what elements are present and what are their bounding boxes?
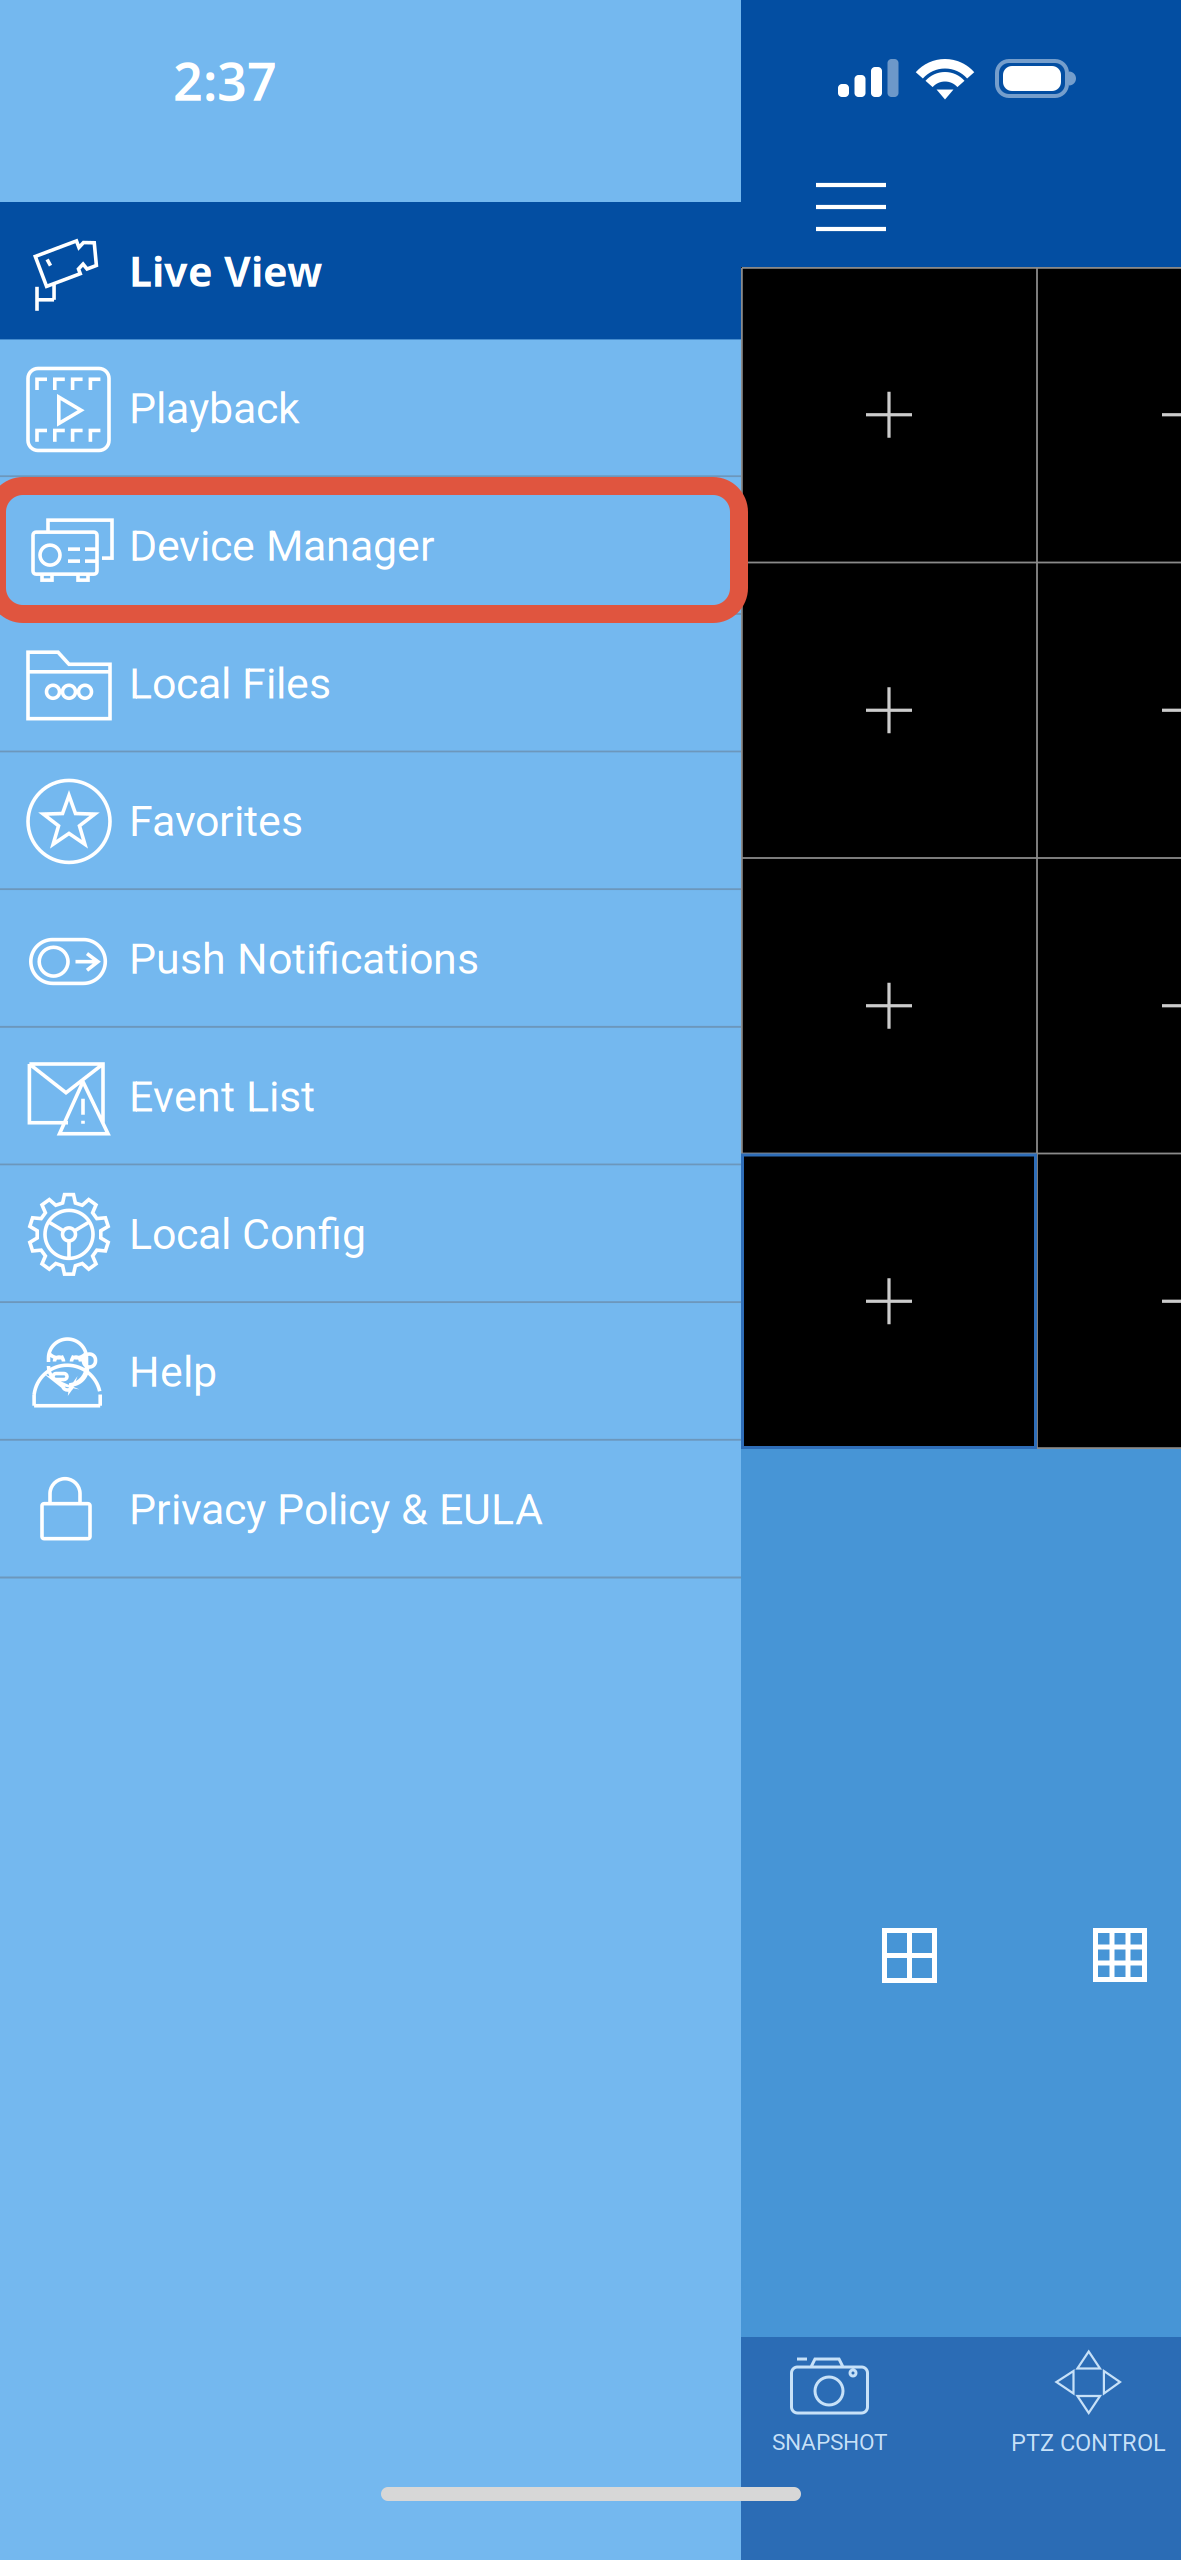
button[interactable]: Favorites [0,753,741,890]
button[interactable]: Device Manager [0,477,741,615]
button[interactable]: Push Notifications [0,890,741,1028]
staticText: SNAPSHOT [772,2429,888,2456]
button[interactable]: Nine camera layout [1057,1892,1181,2018]
staticText: Local Config [129,1209,366,1259]
staticText: Favorites [129,796,303,847]
button[interactable]: Local Config [0,1165,741,1303]
button[interactable]: Local Files [0,615,741,753]
staticText: Help [129,1347,217,1397]
staticText: Device Manager [129,521,435,571]
button[interactable]: SNAPSHOT [741,2337,917,2487]
staticText: 2:37 [173,46,277,115]
staticText: Local Files [129,659,331,709]
button[interactable]: Event List [0,1028,741,1166]
button[interactable]: Menu [786,153,916,261]
button[interactable]: Privacy Policy & EULA [0,1441,741,1579]
staticText: PTZ CONTROL [1011,2429,1166,2457]
button[interactable]: Live View [0,202,741,340]
button[interactable]: Help [0,1303,741,1441]
staticText: Push Notifications [129,934,479,984]
staticText: Privacy Policy & EULA [129,1484,543,1535]
button[interactable]: PTZ CONTROL [999,2337,1181,2487]
button[interactable]: Playback [0,340,741,477]
button[interactable]: Four camera layout [846,1892,973,2019]
staticText: Event List [129,1072,315,1122]
staticText: Live View [129,243,322,298]
staticText: Playback [129,383,300,434]
